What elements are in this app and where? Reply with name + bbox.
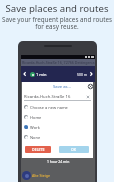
other: Back xyxy=(22,71,28,77)
button[interactable]: Close xyxy=(86,82,94,90)
staticText: Ricarda-Huch-Straße 16, 72766 Dettingen … xyxy=(22,60,95,65)
button[interactable]: DELETE xyxy=(25,146,51,153)
staticText: 1 hour 24 min xyxy=(47,159,70,164)
button[interactable]: Work xyxy=(24,123,91,131)
button[interactable]: Home xyxy=(24,113,91,121)
button[interactable]: None xyxy=(24,133,91,141)
staticText: Work xyxy=(30,125,40,130)
button[interactable]: Recenter xyxy=(22,171,31,180)
staticText: OK xyxy=(71,147,77,152)
staticText: Choose a new name xyxy=(30,105,68,110)
staticText: 500 m xyxy=(77,72,87,77)
staticText: Home xyxy=(30,115,42,120)
staticText: Alte Steige xyxy=(32,173,50,178)
other: Next step xyxy=(88,71,94,77)
staticText: 1 min xyxy=(36,72,47,77)
staticText: Save places and routes xyxy=(0,2,114,15)
staticText: Save as... xyxy=(53,84,71,90)
staticText: None xyxy=(30,135,41,140)
button[interactable]: Choose a new name xyxy=(24,103,91,111)
other: Clear xyxy=(86,95,90,99)
staticText: DELETE xyxy=(32,147,45,152)
staticText: Save your frequent places and routes for… xyxy=(0,15,114,31)
staticText: Ricarda-Huch-Straße 16 xyxy=(24,94,71,100)
button[interactable]: OK xyxy=(59,146,89,153)
